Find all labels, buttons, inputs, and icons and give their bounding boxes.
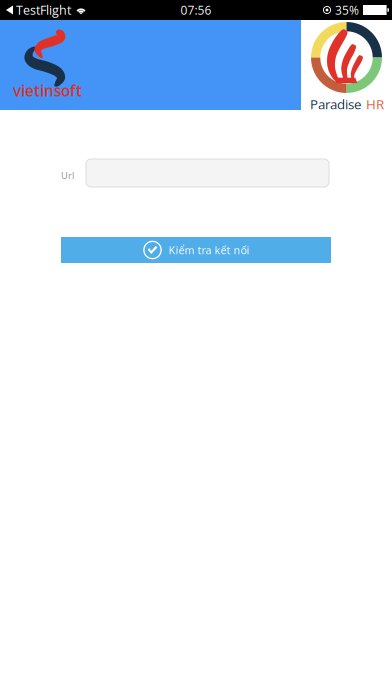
staticText: 35% [335,2,359,18]
staticText: Url [61,169,74,182]
staticText: Kiểm tra kết nối [168,243,249,257]
staticText: Paradise [310,95,361,113]
staticText: TestFlight [16,1,71,19]
button[interactable]: Kiểm tra kết nối [61,237,331,263]
staticText: vietinsoft [13,80,82,101]
staticText: 07:56 [180,2,211,18]
staticText: HR [366,95,384,113]
